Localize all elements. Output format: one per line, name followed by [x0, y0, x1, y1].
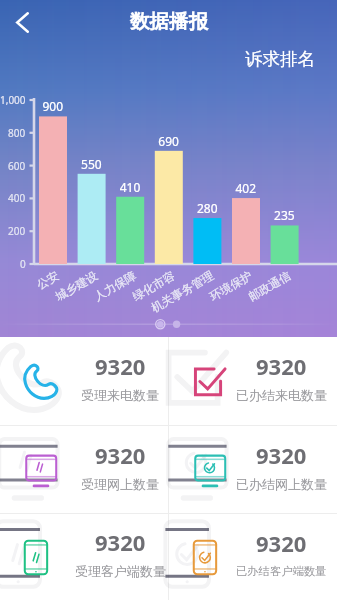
staticText: 9320: [256, 440, 307, 470]
button[interactable]: 9320: [169, 426, 337, 513]
staticText: 9320: [95, 527, 146, 557]
button[interactable]: 9320: [0, 426, 168, 513]
button[interactable]: Page 1: [152, 316, 169, 333]
staticText: 已办结来电数量: [236, 387, 327, 403]
button[interactable]: Back: [0, 0, 44, 44]
staticText: 诉求排名: [245, 48, 315, 70]
staticText: 受理网上数量: [81, 476, 159, 492]
staticText: 已办结客户端数量: [236, 564, 327, 578]
button[interactable]: 9320: [169, 337, 337, 425]
staticText: 受理来电数量: [81, 387, 159, 403]
staticText: 9320: [95, 351, 146, 381]
staticText: 9320: [95, 440, 146, 470]
staticText: 9320: [256, 528, 307, 558]
staticText: 9320: [256, 351, 307, 381]
staticText: 已办结网上数量: [236, 476, 327, 492]
staticText: 受理客户端数量: [75, 563, 166, 579]
button[interactable]: 诉求排名: [245, 48, 337, 78]
button[interactable]: 9320: [169, 514, 337, 600]
button[interactable]: 9320: [0, 337, 168, 425]
staticText: 数据播报: [130, 9, 208, 34]
button[interactable]: Page 2: [169, 316, 185, 332]
button[interactable]: 9320: [0, 514, 168, 600]
